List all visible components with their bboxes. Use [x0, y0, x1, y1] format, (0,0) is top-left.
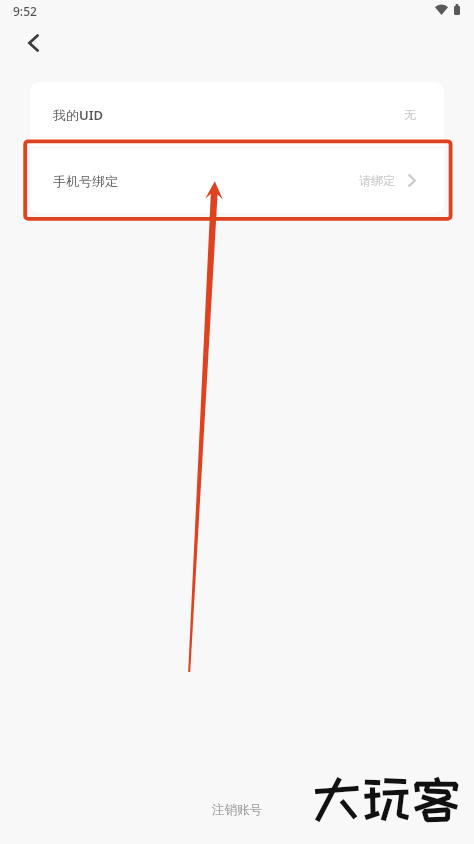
- staticText: 无: [404, 107, 416, 122]
- staticText: 手机号绑定: [53, 173, 118, 189]
- staticText: 大玩客: [312, 771, 462, 825]
- staticText: 9:52: [13, 3, 37, 19]
- button[interactable]: Back: [15, 25, 51, 61]
- button[interactable]: 手机号绑定: [30, 148, 444, 213]
- staticText: 我的UID: [53, 106, 104, 124]
- button[interactable]: 我的UID: [30, 82, 444, 147]
- staticText: 请绑定: [359, 173, 395, 188]
- button[interactable]: 注销账号: [212, 802, 262, 818]
